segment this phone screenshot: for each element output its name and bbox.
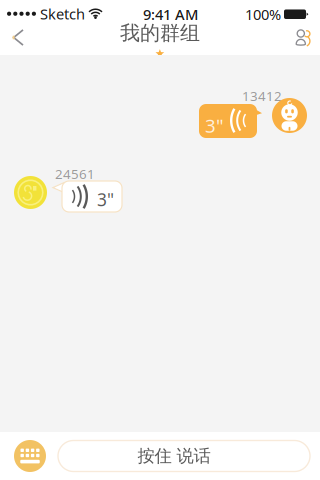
staticText: 3": [97, 188, 114, 211]
staticText: 按住 说话: [137, 445, 210, 467]
button[interactable]: Group members: [284, 20, 320, 54]
button[interactable]: Keyboard: [0, 440, 46, 472]
staticText: 100%: [245, 4, 281, 24]
staticText: 13412: [242, 87, 282, 105]
staticText: Sketch: [40, 4, 85, 23]
staticText: 3": [205, 113, 224, 138]
staticText: 我的群组: [120, 21, 200, 45]
staticText: 9:41 AM: [143, 4, 198, 24]
button[interactable]: 按住 说话: [46, 440, 320, 471]
staticText: 24561: [55, 165, 95, 183]
button[interactable]: Back: [0, 17, 38, 58]
